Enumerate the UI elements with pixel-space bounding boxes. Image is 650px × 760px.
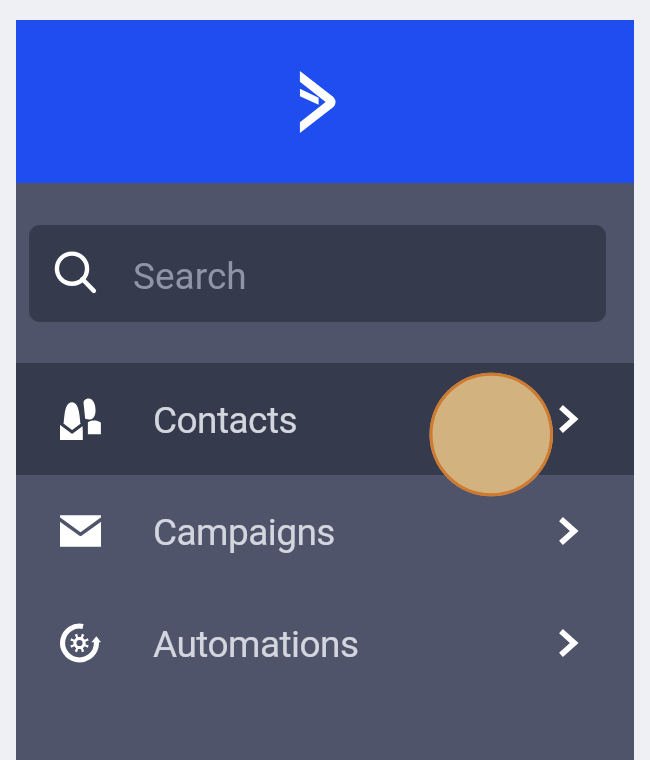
other: ActiveCampaign — [299, 71, 337, 133]
other: Open Automations — [558, 587, 578, 699]
button[interactable]: Campaigns — [16, 475, 634, 587]
staticText: Search — [133, 255, 247, 298]
other: Search — [53, 250, 93, 290]
button[interactable]: Automations — [16, 587, 634, 699]
other: Open Campaigns — [558, 475, 578, 587]
staticText: Contacts — [153, 399, 298, 442]
button[interactable]: Contacts — [16, 363, 634, 475]
other: Open Contacts — [558, 363, 578, 475]
button[interactable]: Search — [29, 225, 606, 322]
staticText: Automations — [153, 623, 359, 666]
staticText: Campaigns — [153, 511, 335, 554]
